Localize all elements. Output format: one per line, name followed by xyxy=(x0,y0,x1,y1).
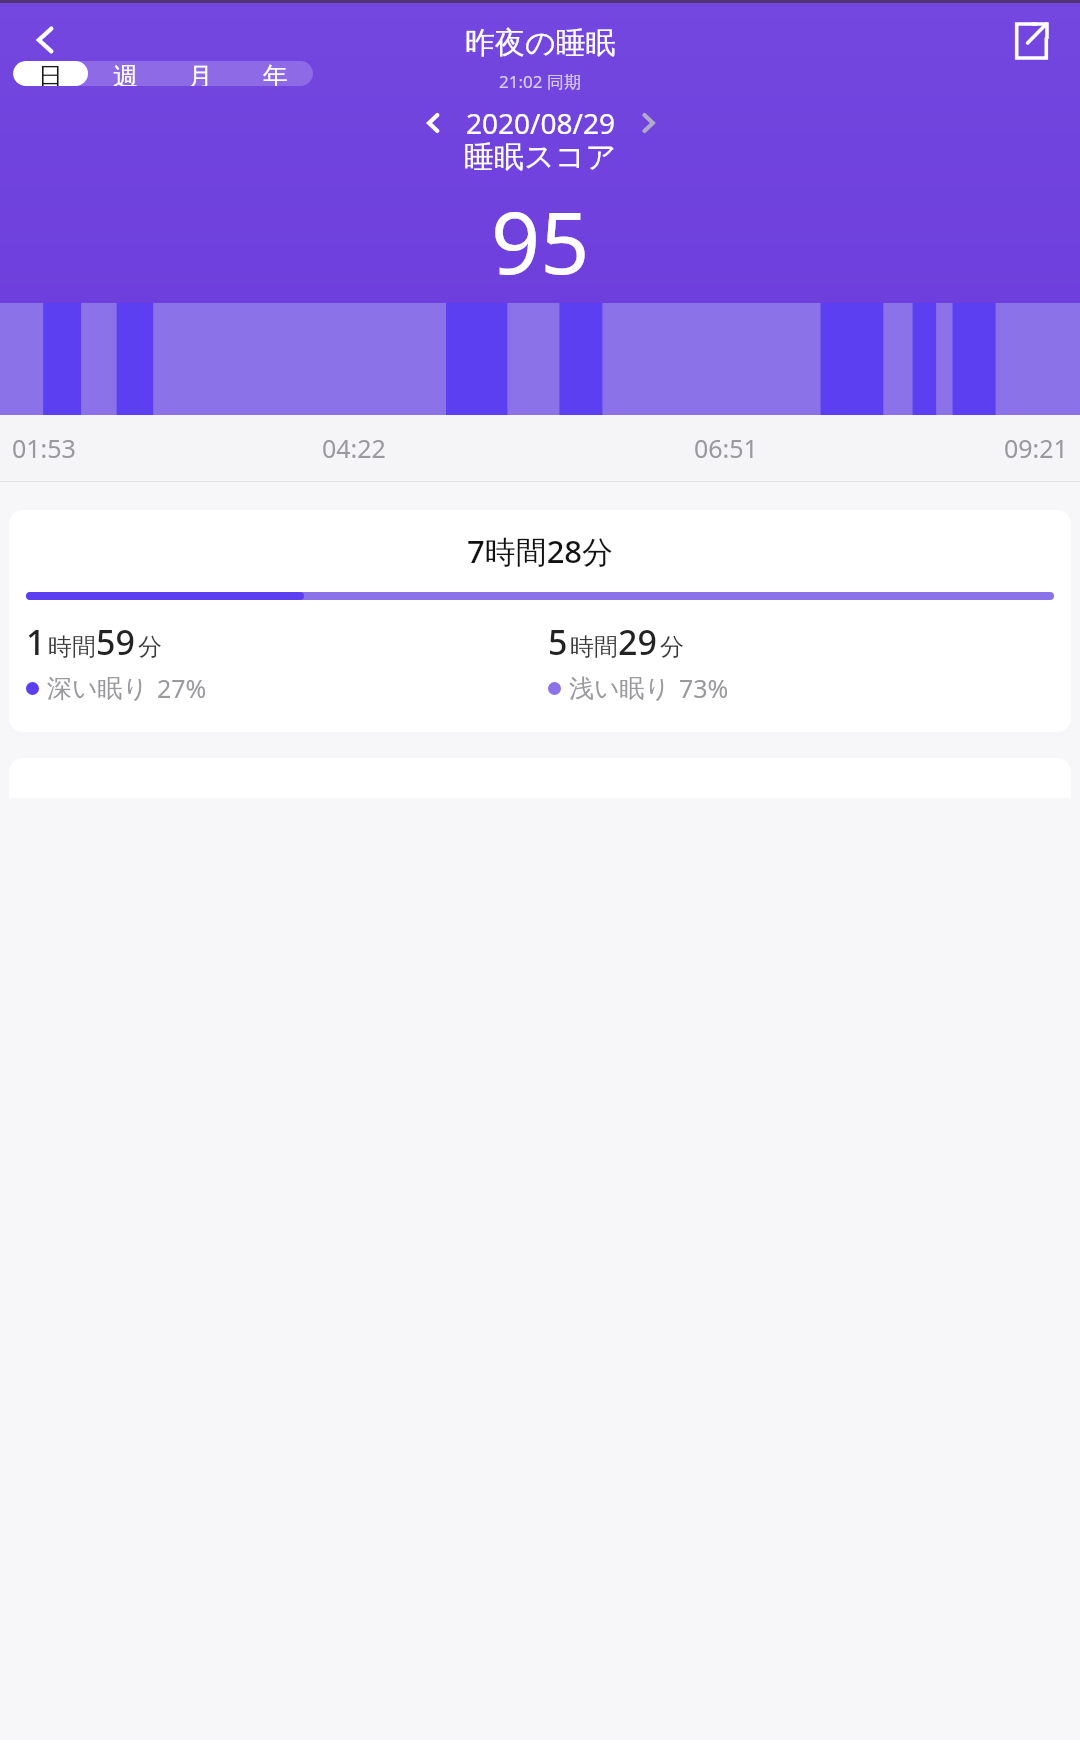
staticText: 時間 xyxy=(570,632,618,662)
staticText: 73% xyxy=(679,671,729,705)
staticText: 06:51 xyxy=(694,431,758,465)
staticText: 分 xyxy=(660,632,684,662)
button[interactable]: Previous day xyxy=(410,100,456,146)
staticText: 日 xyxy=(38,61,63,86)
button[interactable]: 日 xyxy=(13,61,88,86)
staticText: 04:22 xyxy=(322,431,386,465)
staticText: 月 xyxy=(188,61,213,86)
button[interactable]: 週 xyxy=(88,61,163,86)
button[interactable]: Back xyxy=(10,4,82,76)
staticText: 2020/08/29 xyxy=(466,104,615,142)
staticText: 95 xyxy=(491,182,590,299)
button[interactable]: Next day xyxy=(625,100,671,146)
staticText: 29 xyxy=(618,619,657,665)
staticText: 時間 xyxy=(48,632,96,662)
staticText: 7時間28分 xyxy=(9,530,1071,572)
staticText: 深い眠り xyxy=(47,673,149,704)
staticText: 5 xyxy=(548,619,568,665)
staticText: 09:21 xyxy=(1004,431,1068,465)
button[interactable]: 年 xyxy=(238,61,313,86)
staticText: 1 xyxy=(26,619,46,665)
button[interactable]: 7時間28分 xyxy=(9,510,1071,732)
staticText: 21:02 同期 xyxy=(499,70,581,93)
button[interactable]: Share xyxy=(996,6,1066,76)
staticText: 01:53 xyxy=(12,431,76,465)
staticText: 睡眠スコア xyxy=(464,138,617,176)
staticText: 59 xyxy=(96,619,135,665)
staticText: 浅い眠り xyxy=(569,673,671,704)
staticText: 27% xyxy=(157,671,207,705)
staticText: 年 xyxy=(263,61,288,86)
staticText: 昨夜の睡眠 xyxy=(465,24,616,62)
staticText: 分 xyxy=(138,632,162,662)
staticText: 週 xyxy=(113,61,138,86)
button[interactable]: 月 xyxy=(163,61,238,86)
